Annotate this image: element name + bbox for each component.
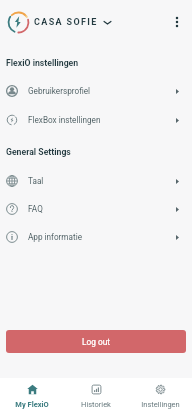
button[interactable]: FAQ [0,195,192,223]
button[interactable]: My FlexiO [0,378,64,410]
staticText: General Settings [6,147,71,157]
staticText: Gebruikersprofiel [28,86,91,96]
staticText: App informatie [28,232,83,242]
button[interactable]: Instellingen [128,378,192,410]
staticText: FAQ [28,204,43,214]
staticText: CASA SOFIE [34,17,98,28]
button[interactable]: FlexBox instellingen [0,106,192,134]
staticText: Taal [28,176,44,186]
staticText: FlexBox instellingen [28,115,101,125]
button[interactable]: Taal [0,167,192,195]
button[interactable]: Historiek [64,378,128,410]
staticText: Historiek [81,400,111,409]
staticText: My FlexiO [15,400,49,409]
button[interactable]: Log out [6,330,186,353]
button[interactable]: Gebruikersprofiel [0,76,192,106]
button[interactable]: More options [164,9,190,35]
button[interactable]: App informatie [0,223,192,251]
staticText: Instellingen [141,400,180,409]
staticText: FlexiO instellingen [6,58,79,68]
staticText: Log out [82,337,110,347]
